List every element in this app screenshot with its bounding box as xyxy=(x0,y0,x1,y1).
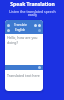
staticText: Speak Translation xyxy=(10,1,55,8)
staticText: Listen the translated speech easily xyxy=(9,9,56,17)
staticText: Translate xyxy=(14,23,27,27)
staticText: Translated text here xyxy=(7,73,40,78)
staticText: English xyxy=(15,28,26,32)
staticText: Hello, how are you doing? xyxy=(7,35,43,45)
